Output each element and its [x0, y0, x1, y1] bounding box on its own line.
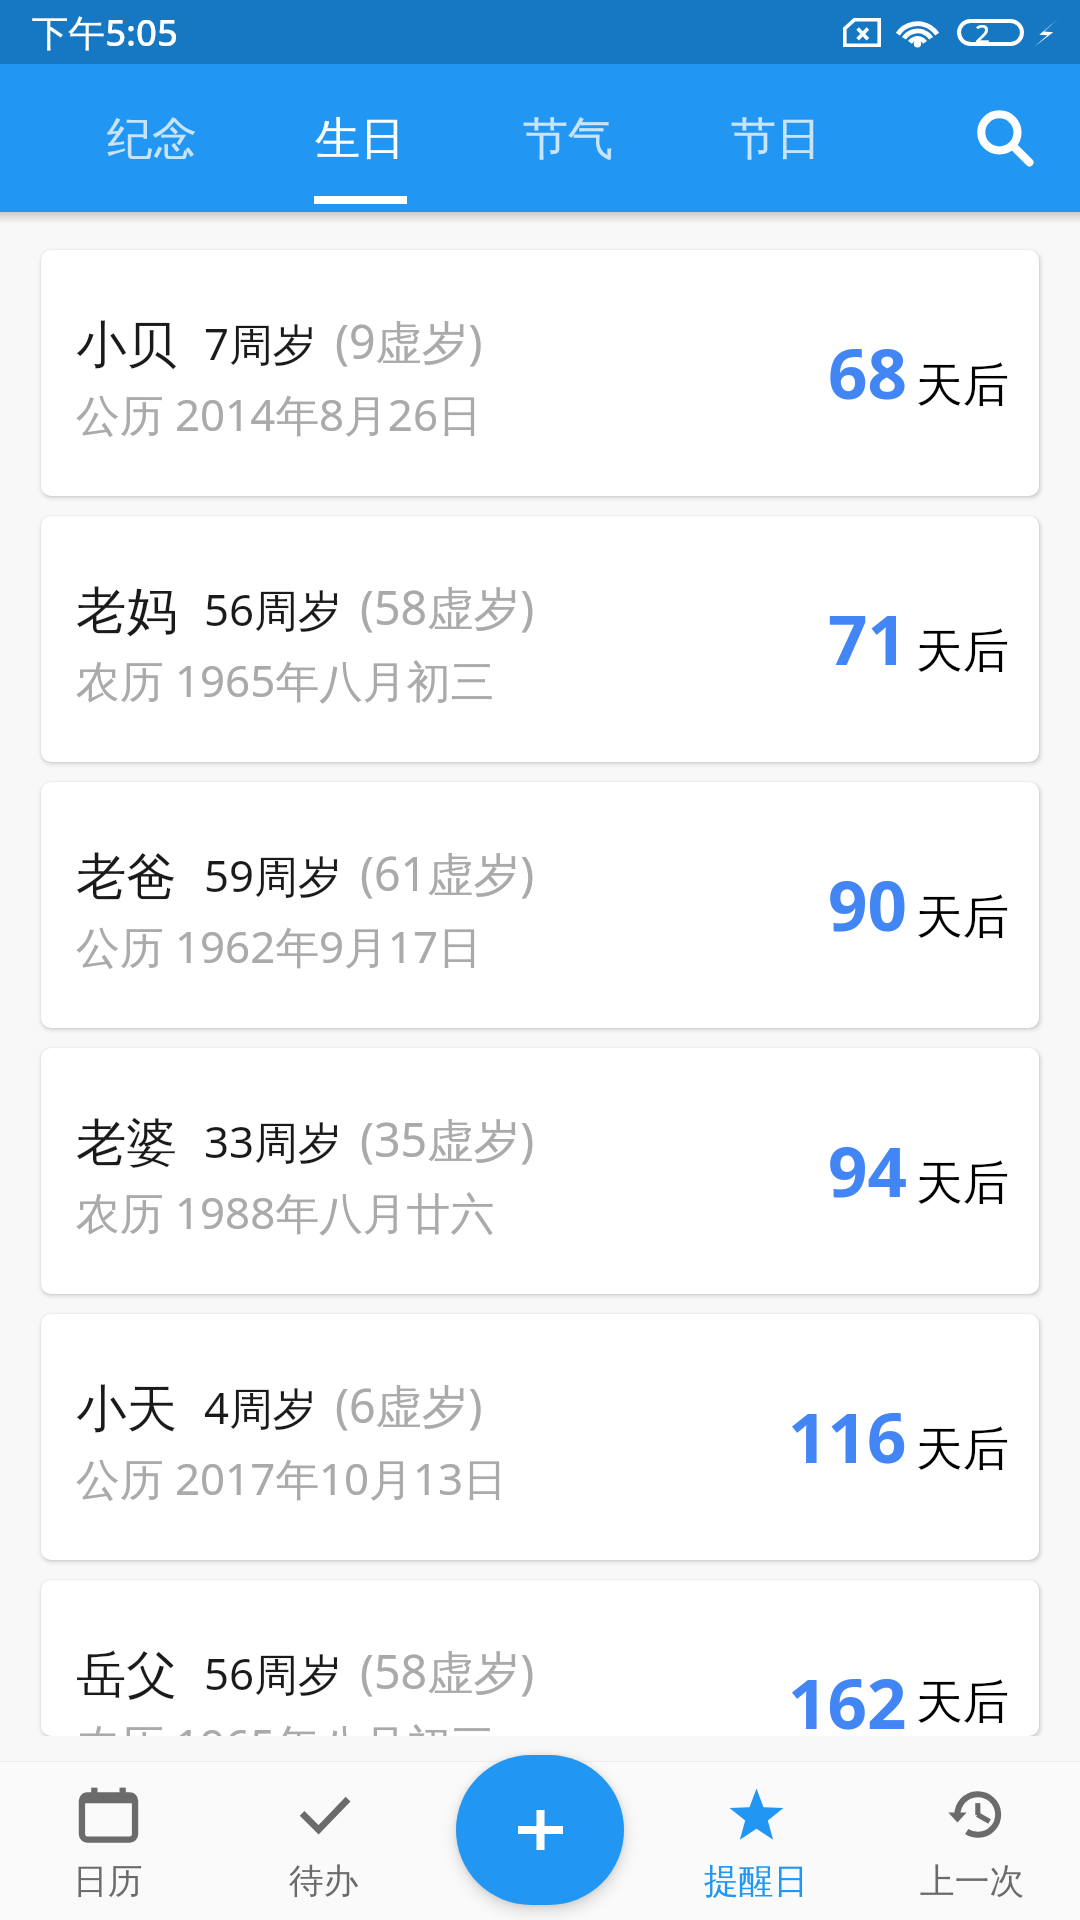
staticText: 日历: [73, 1859, 143, 1903]
button[interactable]: Add: [456, 1755, 624, 1905]
staticText: 公历 2017年10月13日: [76, 1448, 507, 1508]
button[interactable]: 小贝: [41, 250, 1039, 496]
button[interactable]: Search: [888, 64, 1080, 212]
button[interactable]: 纪念: [48, 64, 256, 212]
staticText: 天后: [916, 1420, 1010, 1479]
staticText: 岳父: [76, 1643, 177, 1706]
staticText: 天后: [916, 356, 1010, 415]
button[interactable]: 节日: [672, 64, 880, 212]
staticText: 162: [788, 1655, 907, 1736]
staticText: 56周岁: [204, 1643, 342, 1703]
staticText: 节气: [523, 111, 613, 168]
staticText: 71: [828, 591, 907, 685]
button[interactable]: 节气: [464, 64, 672, 212]
staticText: (58虚岁): [360, 575, 535, 639]
staticText: (6虚岁): [335, 1373, 483, 1437]
staticText: 农历 1988年八月廿六: [76, 1182, 495, 1242]
staticText: 上一次: [920, 1859, 1025, 1903]
staticText: 56周岁: [204, 579, 342, 639]
staticText: (58虚岁): [360, 1639, 535, 1703]
staticText: 天后: [916, 1673, 1010, 1732]
staticText: 提醒日: [704, 1859, 809, 1903]
staticText: (61虚岁): [360, 841, 535, 905]
staticText: 天后: [916, 622, 1010, 681]
staticText: 2: [975, 15, 990, 50]
button[interactable]: 老爸: [41, 782, 1039, 1028]
staticText: 老妈: [76, 579, 177, 642]
staticText: 4周岁: [204, 1377, 317, 1437]
staticText: 33周岁: [204, 1111, 342, 1171]
staticText: 待办: [289, 1859, 359, 1903]
staticText: 小天: [76, 1377, 177, 1440]
staticText: 116: [788, 1389, 907, 1483]
button[interactable]: 岳父: [41, 1580, 1039, 1736]
button[interactable]: 老婆: [41, 1048, 1039, 1294]
staticText: 7周岁: [204, 313, 317, 373]
button[interactable]: 小天: [41, 1314, 1039, 1560]
button[interactable]: 上一次: [864, 1762, 1080, 1920]
button[interactable]: 待办: [216, 1762, 432, 1920]
staticText: 公历 1962年9月17日: [76, 916, 482, 976]
staticText: 小贝: [76, 313, 177, 376]
staticText: 公历 2014年8月26日: [76, 384, 482, 444]
staticText: (35虚岁): [360, 1107, 535, 1171]
staticText: 老婆: [76, 1111, 177, 1174]
staticText: (9虚岁): [335, 309, 483, 373]
staticText: 下午5:05: [32, 7, 178, 57]
staticText: 90: [828, 857, 907, 951]
staticText: 节日: [731, 111, 821, 168]
staticText: 农历 1965年八月初三: [76, 650, 495, 710]
staticText: 纪念: [107, 111, 197, 168]
button[interactable]: 日历: [0, 1762, 216, 1920]
staticText: 老爸: [76, 845, 177, 908]
staticText: 天后: [916, 888, 1010, 947]
staticText: 59周岁: [204, 845, 342, 905]
button[interactable]: 老妈: [41, 516, 1039, 762]
staticText: 生日: [315, 111, 405, 168]
staticText: 农历 1965年八月初三: [76, 1714, 495, 1736]
staticText: 天后: [916, 1154, 1010, 1213]
button[interactable]: 生日: [256, 64, 464, 212]
staticText: 94: [828, 1123, 907, 1217]
staticText: 68: [828, 325, 907, 419]
button[interactable]: 提醒日: [648, 1762, 864, 1920]
